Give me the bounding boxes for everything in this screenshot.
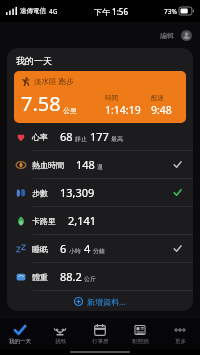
staticText: 1:14:19 — [105, 103, 141, 117]
button[interactable]: 卡路里 — [7, 207, 193, 234]
button[interactable]: 體重 — [7, 263, 193, 290]
button[interactable]: 步數 — [7, 179, 193, 206]
staticText: 68 — [60, 129, 73, 144]
staticText: 4G — [49, 7, 58, 16]
staticText: 卡路里 — [32, 216, 56, 226]
staticText: 公斤 — [84, 275, 96, 283]
staticText: 7.58 — [21, 90, 61, 117]
button[interactable]: 我的一天 — [0, 319, 40, 349]
button[interactable]: 動態牆 — [120, 319, 160, 349]
staticText: 睡眠 — [32, 244, 48, 254]
staticText: 遠傳電信 — [20, 7, 46, 15]
staticText: 行事曆 — [92, 338, 109, 345]
staticText: 心率 — [32, 132, 48, 142]
button[interactable]: 行事曆 — [80, 319, 120, 349]
staticText: 177 — [90, 129, 109, 144]
staticText: 公里 — [63, 106, 77, 115]
staticText: 我的一天 — [9, 338, 31, 345]
staticText: 我的一天 — [16, 55, 52, 66]
staticText: 分鐘 — [93, 247, 105, 255]
staticText: 4 — [84, 241, 91, 256]
staticText: 13,309 — [60, 185, 95, 200]
staticText: 小時 — [69, 247, 81, 255]
button[interactable]: 睡眠 — [7, 235, 193, 262]
staticText: 淡水區 跑步 — [34, 76, 74, 86]
staticText: 挑戰 — [55, 338, 66, 345]
staticText: 編輯 — [160, 31, 174, 40]
button[interactable]: 更多 — [160, 319, 200, 349]
staticText: 下午 1:56 — [94, 6, 128, 17]
staticText: 體重 — [32, 272, 48, 282]
button[interactable]: 編輯 — [158, 29, 176, 42]
staticText: 更多 — [175, 338, 186, 345]
staticText: 2,141 — [68, 213, 97, 228]
staticText: 動態牆 — [132, 338, 149, 345]
button[interactable]: 熱血時間 — [7, 151, 193, 178]
staticText: 9:48 — [151, 103, 172, 117]
button[interactable]: Profile — [181, 30, 192, 41]
staticText: 步數 — [32, 188, 48, 198]
staticText: 88.2 — [60, 269, 82, 284]
staticText: 最高 — [111, 135, 123, 143]
staticText: 配速 — [151, 94, 164, 102]
button[interactable]: 新增資料… — [7, 291, 193, 311]
button[interactable]: 挑戰 — [40, 319, 80, 349]
staticText: 6 — [60, 241, 67, 256]
staticText: 週 — [97, 163, 103, 171]
staticText: 時間 — [105, 94, 118, 102]
staticText: 73% — [164, 7, 177, 16]
staticText: 熱血時間 — [32, 160, 64, 170]
staticText: 靜止 — [75, 135, 87, 143]
staticText: 148 — [76, 157, 95, 172]
staticText: 新增資料… — [87, 296, 126, 307]
button[interactable]: 淡水區 跑步 — [14, 71, 186, 123]
button[interactable]: 心率 — [7, 123, 193, 150]
